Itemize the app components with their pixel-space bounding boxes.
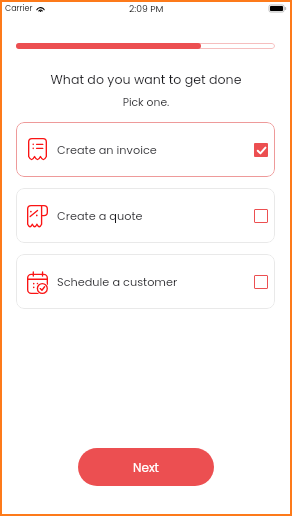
staticText: Carrier	[5, 3, 33, 14]
staticText: Schedule a customer	[57, 274, 178, 290]
button[interactable]: Schedule a customer	[16, 254, 275, 309]
button[interactable]: Create an invoice	[16, 122, 275, 177]
staticText: What do you want to get done	[0, 71, 292, 89]
staticText: 2:09 PM	[129, 2, 164, 15]
staticText: Create a quote	[57, 208, 143, 224]
staticText: Pick one.	[0, 95, 292, 110]
staticText: Next	[133, 459, 159, 476]
button[interactable]: Next	[78, 448, 214, 486]
button[interactable]: Create a quote	[16, 188, 275, 243]
staticText: Create an invoice	[57, 142, 157, 158]
